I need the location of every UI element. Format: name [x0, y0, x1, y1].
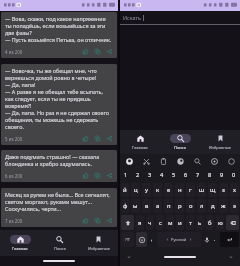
staticText: с — [159, 219, 162, 227]
staticText: . — [214, 236, 216, 243]
button[interactable]: 0 — [228, 168, 240, 182]
button[interactable]: д — [208, 199, 217, 213]
button[interactable]: м — [166, 215, 174, 230]
staticText: е — [167, 186, 171, 194]
staticText: 5 — [172, 171, 176, 179]
button[interactable]: Backspace — [226, 215, 239, 230]
button[interactable]: Искать — [120, 11, 240, 24]
button[interactable]: и — [176, 215, 184, 230]
button[interactable]: Themes — [172, 154, 189, 168]
button[interactable]: Space — [157, 232, 201, 247]
button[interactable]: Enter — [220, 232, 239, 247]
button[interactable]: с — [156, 215, 164, 230]
button[interactable]: л — [197, 199, 206, 213]
button[interactable]: о — [186, 199, 195, 213]
button[interactable]: Clipboard — [155, 154, 172, 168]
button[interactable]: Share — [105, 134, 114, 143]
button[interactable]: р — [175, 199, 184, 213]
button[interactable]: Settings — [206, 154, 223, 168]
button[interactable]: ж — [219, 199, 228, 213]
staticText: п — [167, 202, 171, 210]
button[interactable]: ш — [197, 183, 206, 197]
staticText: Месяц за рулем не была... Все сигналят, — [5, 191, 110, 198]
button[interactable]: а — [153, 199, 162, 213]
button[interactable]: г — [186, 183, 195, 197]
staticText: 5 из 200 — [5, 136, 23, 142]
button[interactable]: ц — [131, 183, 140, 197]
button[interactable]: Share — [105, 171, 114, 180]
button[interactable]: э — [230, 199, 239, 213]
button[interactable]: Like — [81, 134, 90, 143]
button[interactable]: Поиск — [40, 230, 79, 256]
button[interactable]: — Вовочка, ты же обещал мне, что — [1, 64, 117, 145]
button[interactable]: й — [121, 183, 129, 197]
button[interactable]: Избранные — [79, 230, 118, 256]
button[interactable]: Search — [189, 154, 206, 168]
button[interactable]: 7 — [192, 168, 204, 182]
button[interactable]: Shift — [121, 215, 134, 230]
button[interactable]: — Вова, скажи, под какое напряжение — [1, 12, 117, 58]
button[interactable]: ф — [121, 199, 129, 213]
button[interactable]: Share — [105, 216, 114, 225]
button[interactable]: п — [164, 199, 173, 213]
button[interactable]: Voice — [203, 232, 210, 247]
button[interactable]: Stickers — [138, 154, 155, 168]
button[interactable]: More — [223, 154, 240, 168]
button[interactable]: Like — [81, 171, 90, 180]
button[interactable]: я — [136, 215, 144, 230]
button[interactable]: Gboard — [120, 154, 138, 168]
button[interactable]: ь — [196, 215, 204, 230]
button[interactable]: н — [175, 183, 184, 197]
button[interactable]: 2 — [132, 168, 144, 182]
staticText: ш — [199, 186, 205, 194]
button[interactable]: . — [212, 232, 218, 247]
button[interactable]: 1 — [120, 168, 132, 182]
staticText: 6 — [184, 171, 188, 179]
button[interactable]: Copy — [93, 47, 102, 56]
button[interactable]: Главная — [120, 130, 160, 154]
button[interactable]: т — [186, 215, 194, 230]
button[interactable]: 8 — [204, 168, 216, 182]
button[interactable]: х — [230, 183, 239, 197]
button[interactable]: в — [142, 199, 151, 213]
button[interactable]: 6 — [180, 168, 192, 182]
staticText: своего. — [5, 123, 24, 130]
button[interactable]: к — [153, 183, 162, 197]
staticText: й — [123, 186, 127, 194]
button[interactable]: Даже подумать страшно! — сказала — [1, 150, 117, 182]
staticText: вовремя?! — [5, 102, 32, 109]
button[interactable]: Избранные — [200, 130, 240, 154]
staticText: как следует, если ты не придешь — [5, 95, 91, 102]
staticText: ты попадёшь, если возьмёшься за эти — [5, 22, 106, 29]
button[interactable]: 4 — [156, 168, 168, 182]
button[interactable]: Like — [81, 216, 90, 225]
button[interactable]: б — [206, 215, 214, 230]
staticText: ы — [133, 202, 138, 210]
button[interactable]: щ — [208, 183, 217, 197]
button[interactable]: 3 — [144, 168, 156, 182]
button[interactable]: Месяц за рулем не была... Все сигналят, — [1, 188, 117, 227]
staticText: 9 — [220, 171, 224, 179]
button[interactable]: Copy — [93, 216, 102, 225]
button[interactable]: ю — [216, 215, 224, 230]
button[interactable]: Like — [81, 47, 90, 56]
button[interactable]: ?!T — [121, 232, 134, 247]
button[interactable]: 5 — [168, 168, 180, 182]
staticText: вернешься домой ровно в четыре! — [5, 74, 97, 81]
button[interactable]: Главная — [0, 230, 40, 256]
staticText: з — [222, 186, 225, 194]
button[interactable]: у — [142, 183, 151, 197]
button[interactable]: ы — [131, 199, 140, 213]
button[interactable]: Emoji — [136, 232, 147, 247]
staticText: — Вова, скажи, под какое напряжение — [5, 15, 106, 22]
staticText: Соскучились, черти... — [5, 205, 61, 212]
button[interactable]: 9 — [216, 168, 228, 182]
button[interactable]: , — [149, 232, 155, 247]
button[interactable]: Поиск — [160, 130, 200, 154]
button[interactable]: Share — [105, 47, 114, 56]
button[interactable]: ч — [146, 215, 154, 230]
button[interactable]: Copy — [93, 134, 102, 143]
button[interactable]: з — [219, 183, 228, 197]
button[interactable]: е — [164, 183, 173, 197]
button[interactable]: Copy — [93, 171, 102, 180]
